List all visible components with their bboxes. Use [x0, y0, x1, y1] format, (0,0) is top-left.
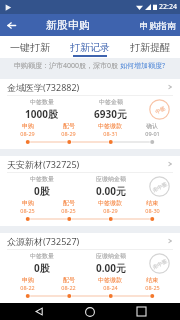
staticText: 配号 — [63, 122, 75, 130]
staticText: 结束 — [146, 199, 158, 207]
staticText: 09-01 — [145, 130, 160, 137]
staticText: 如何增加额度? — [120, 61, 166, 71]
staticText: 打新提醒 — [130, 41, 170, 54]
staticText: 08-29 — [61, 130, 76, 137]
button[interactable]: 申购指南 — [140, 20, 176, 31]
staticText: 应缴纳金额 — [96, 252, 126, 260]
staticText: 08-29 — [20, 130, 35, 137]
staticText: 金域医学(732882) — [7, 81, 80, 93]
staticText: 天安新材(732725) — [7, 158, 80, 170]
staticText: 08-30 — [145, 207, 160, 214]
staticText: 申购指南 — [140, 20, 176, 31]
staticText: 0.00元 — [96, 261, 126, 275]
staticText: 一键打新 — [10, 41, 50, 54]
button[interactable]: 打新提醒 — [120, 36, 180, 58]
staticText: 1000股 — [25, 107, 58, 121]
staticText: 0股 — [34, 261, 50, 275]
button[interactable]: Recent apps — [129, 303, 153, 320]
staticText: 中签缴款 — [98, 122, 122, 130]
staticText: 中签金额 — [99, 98, 123, 106]
button[interactable]: 一键打新 — [0, 36, 60, 58]
staticText: 08-25 — [61, 207, 76, 214]
staticText: 08-25 — [20, 207, 35, 214]
staticText: 08-22 — [20, 284, 35, 291]
button[interactable]: Back — [27, 303, 51, 320]
staticText: 中签数量 — [30, 175, 54, 183]
staticText: 未中签 — [151, 258, 168, 270]
button[interactable]: 如何增加额度? — [120, 61, 166, 71]
staticText: 申购额度：沪市4000股，深市0股 — [14, 61, 120, 71]
staticText: 配号 — [63, 276, 75, 284]
staticText: 众源新材(732527) — [7, 235, 80, 247]
staticText: 0股 — [34, 184, 50, 198]
staticText: 申购 — [22, 276, 34, 284]
staticText: 08-29 — [103, 207, 118, 214]
staticText: 中签数量 — [30, 98, 54, 106]
staticText: 未中签 — [151, 181, 168, 193]
button[interactable]: 打新记录 — [60, 36, 120, 58]
staticText: 08-25 — [145, 284, 160, 291]
staticText: 申购 — [22, 199, 34, 207]
staticText: 08-31 — [103, 130, 118, 137]
staticText: 打新记录 — [70, 41, 110, 54]
staticText: 配号 — [63, 199, 75, 207]
staticText: 中签 — [154, 105, 166, 115]
staticText: 应缴纳金额 — [96, 175, 126, 183]
staticText: 0.00元 — [96, 184, 126, 198]
staticText: 申购 — [22, 122, 34, 130]
button[interactable]: 金域医学(732882) — [0, 79, 180, 149]
staticText: 6930元 — [94, 107, 127, 121]
staticText: 22:24 — [159, 2, 177, 12]
staticText: 08-24 — [103, 284, 118, 291]
button[interactable]: 众源新材(732527) — [0, 233, 180, 303]
staticText: 中签缴款 — [98, 199, 122, 207]
staticText: 结束 — [146, 276, 158, 284]
staticText: 中签缴款 — [98, 276, 122, 284]
staticText: 中签数量 — [30, 252, 54, 260]
button[interactable]: 天安新材(732725) — [0, 156, 180, 226]
staticText: 新股申购 — [46, 18, 90, 32]
staticText: 确认 — [146, 122, 158, 130]
button[interactable]: Back — [0, 14, 22, 36]
button[interactable]: Home — [78, 303, 102, 320]
staticText: 08-22 — [61, 284, 76, 291]
